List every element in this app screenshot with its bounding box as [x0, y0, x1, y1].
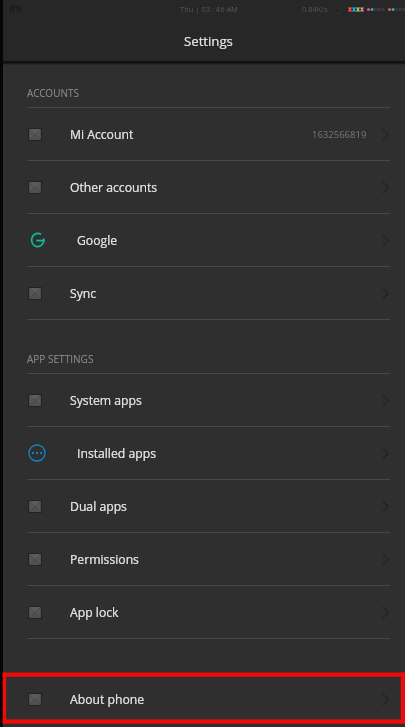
button[interactable]: Dual apps: [3, 480, 405, 532]
staticText: Installed apps: [77, 445, 156, 462]
staticText: APP SETTINGS: [27, 352, 94, 366]
staticText: Other accounts: [70, 179, 158, 196]
button[interactable]: Other accounts: [3, 161, 405, 213]
button[interactable]: Sync: [3, 267, 405, 319]
staticText: Mi Account: [70, 126, 134, 143]
button[interactable]: About phone: [3, 673, 405, 725]
staticText: Thu | 03 : 46 AM: [180, 4, 238, 14]
button[interactable]: Permissions: [3, 533, 405, 585]
staticText: About phone: [70, 691, 145, 708]
staticText: Settings: [184, 32, 233, 50]
other: Mi logo: [10, 6, 21, 13]
button[interactable]: App lock: [3, 586, 405, 638]
button[interactable]: Installed apps: [3, 427, 405, 479]
button[interactable]: System apps: [3, 374, 405, 426]
staticText: Sync: [70, 285, 97, 302]
staticText: 1632566819: [312, 128, 367, 141]
staticText: 0.84K/s: [302, 4, 328, 14]
staticText: ACCOUNTS: [27, 86, 79, 100]
staticText: App lock: [70, 604, 119, 621]
staticText: Permissions: [70, 551, 139, 568]
staticText: Google: [77, 232, 118, 249]
staticText: System apps: [70, 392, 142, 409]
button[interactable]: Mi Account: [3, 108, 405, 160]
staticText: Dual apps: [70, 498, 127, 515]
button[interactable]: Google: [3, 214, 405, 266]
